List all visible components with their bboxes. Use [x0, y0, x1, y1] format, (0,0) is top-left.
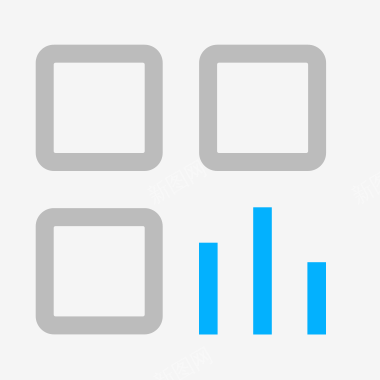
- staticText: 新图网: [145, 169, 208, 195]
- button[interactable]: Documents: [36, 208, 163, 334]
- button[interactable]: Statistics bar one: [199, 243, 218, 334]
- button[interactable]: Library: [199, 45, 326, 171]
- button[interactable]: Overview: [36, 45, 163, 171]
- button[interactable]: Statistics bar two: [253, 207, 272, 334]
- button[interactable]: Statistics bar three: [307, 262, 326, 334]
